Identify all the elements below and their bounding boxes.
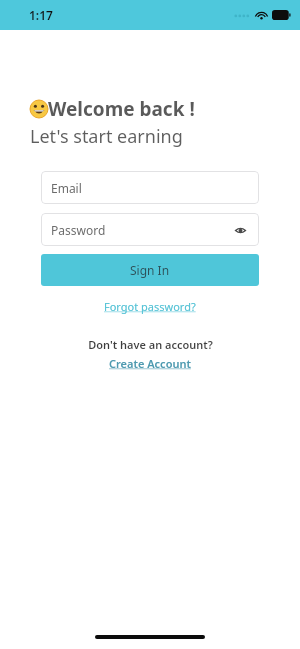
button[interactable]: Forgot password? bbox=[98, 297, 202, 316]
staticText: Create Account bbox=[109, 356, 191, 371]
staticText: Password bbox=[51, 222, 106, 238]
button[interactable]: Email bbox=[41, 171, 259, 204]
staticText: Welcome back ! bbox=[48, 96, 195, 122]
staticText: 1:17 bbox=[29, 7, 53, 23]
staticText: Email bbox=[51, 180, 82, 196]
staticText: Don't have an account? bbox=[88, 337, 213, 352]
button[interactable]: Create Account bbox=[103, 355, 197, 372]
button[interactable]: Password bbox=[41, 213, 259, 246]
staticText: Forgot password? bbox=[104, 299, 196, 314]
staticText: Let's start earning bbox=[30, 124, 183, 149]
button[interactable]: Sign In bbox=[41, 254, 259, 286]
button[interactable]: Show password bbox=[231, 221, 249, 239]
staticText: Sign In bbox=[130, 262, 170, 278]
